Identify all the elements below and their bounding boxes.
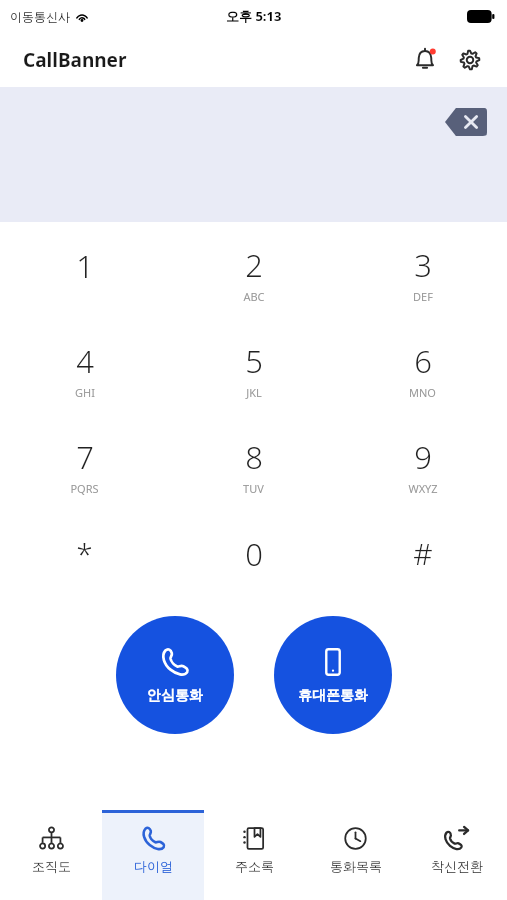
button[interactable]: 1 — [0, 226, 169, 322]
staticText: 휴대폰통화 — [298, 687, 368, 705]
button[interactable]: 휴대폰통화 — [274, 616, 392, 734]
staticText: 2 — [245, 244, 263, 286]
staticText: 6 — [414, 340, 432, 382]
staticText: DEF — [413, 289, 433, 304]
staticText: 8 — [245, 436, 263, 478]
button[interactable]: Backspace — [443, 105, 489, 139]
staticText: 5 — [245, 340, 263, 382]
staticText: 안심통화 — [147, 687, 203, 705]
staticText: ABC — [243, 289, 265, 304]
staticText: 주소록 — [235, 858, 274, 874]
staticText: 착신전환 — [431, 858, 483, 874]
button[interactable]: 3 — [338, 226, 507, 322]
button[interactable]: 6 — [338, 322, 507, 418]
staticText: 9 — [414, 436, 432, 478]
staticText: CallBanner — [23, 47, 127, 73]
staticText: TUV — [243, 481, 264, 496]
staticText: 4 — [76, 340, 94, 382]
button[interactable]: * — [0, 514, 169, 610]
button[interactable]: 착신전환 — [406, 810, 507, 900]
button[interactable]: 8 — [169, 418, 338, 514]
button[interactable]: Notifications — [406, 41, 444, 79]
staticText: 7 — [76, 436, 94, 478]
staticText: MNO — [409, 385, 436, 400]
staticText: JKL — [246, 385, 262, 400]
button[interactable]: 주소록 — [204, 810, 305, 900]
button[interactable]: 2 — [169, 226, 338, 322]
button[interactable]: 4 — [0, 322, 169, 418]
button[interactable]: 조직도 — [0, 810, 102, 900]
button[interactable]: 다이얼 — [102, 810, 204, 900]
button[interactable]: 5 — [169, 322, 338, 418]
staticText: 3 — [414, 244, 432, 286]
button[interactable]: 안심통화 — [116, 616, 234, 734]
staticText: * — [76, 533, 93, 574]
staticText: # — [413, 533, 433, 574]
staticText: GHI — [75, 385, 95, 400]
staticText: PQRS — [70, 481, 99, 496]
staticText: 0 — [245, 533, 263, 575]
staticText: WXYZ — [408, 481, 438, 496]
button[interactable]: 통화목록 — [305, 810, 406, 900]
staticText: 오후 5:13 — [226, 7, 282, 25]
button[interactable]: Settings — [451, 41, 489, 79]
staticText: 통화목록 — [330, 858, 382, 874]
button[interactable]: 9 — [338, 418, 507, 514]
button[interactable]: # — [338, 514, 507, 610]
staticText: 1 — [76, 245, 94, 287]
staticText: 이동통신사 — [10, 9, 70, 24]
button[interactable]: 7 — [0, 418, 169, 514]
staticText: 다이얼 — [134, 858, 173, 874]
button[interactable]: 0 — [169, 514, 338, 610]
staticText: 조직도 — [32, 858, 71, 874]
